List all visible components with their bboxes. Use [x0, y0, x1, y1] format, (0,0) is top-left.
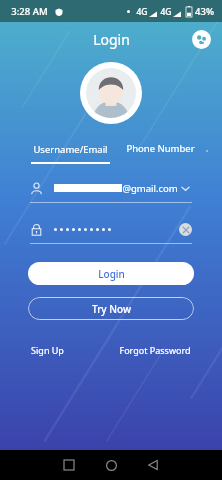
button[interactable]: Phone Number — [124, 144, 197, 161]
staticText: 3:28 AM — [11, 5, 48, 18]
button[interactable]: Forgot Password — [116, 341, 194, 359]
staticText: Try Now — [92, 302, 131, 316]
button[interactable]: Recent apps — [48, 450, 90, 480]
staticText: Login — [93, 30, 130, 49]
staticText: 43% — [195, 5, 214, 18]
button[interactable]: Sign Up — [28, 341, 67, 359]
button[interactable]: Username/Email — [31, 141, 110, 164]
button[interactable]: Login — [85, 26, 138, 53]
button[interactable]: Show saved accounts — [178, 181, 192, 195]
button[interactable]: Clear password — [179, 223, 192, 236]
other: Password — [30, 223, 43, 236]
other: Username — [30, 182, 43, 195]
staticText: 4G — [136, 6, 148, 18]
button[interactable]: Username — [30, 178, 192, 198]
staticText: Phone Number — [126, 142, 195, 155]
staticText: Forgot Password — [119, 344, 191, 356]
staticText: 4G — [160, 6, 172, 18]
staticText: Login — [98, 267, 125, 281]
staticText: Username/Email — [33, 143, 108, 156]
staticText: Sign Up — [31, 344, 64, 356]
button[interactable]: Try Now — [28, 297, 194, 320]
button[interactable]: Login — [28, 262, 194, 285]
button[interactable]: Profile photo — [80, 62, 142, 124]
staticText: @gmail.com — [122, 182, 178, 195]
button[interactable]: Back — [132, 450, 174, 480]
button[interactable]: Change language — [189, 27, 213, 51]
button[interactable]: Password — [30, 219, 192, 239]
button[interactable]: Home — [90, 450, 132, 480]
